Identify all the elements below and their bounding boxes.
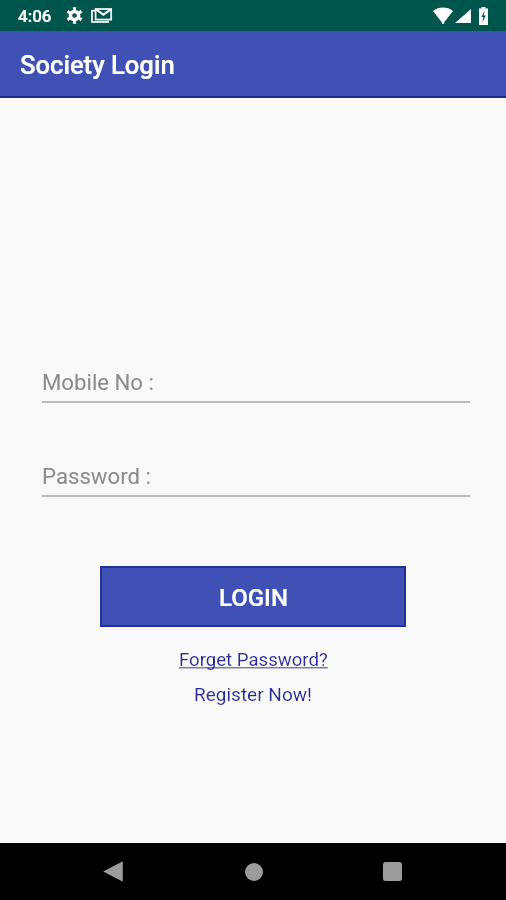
button[interactable]: Register Now! <box>186 680 320 708</box>
staticText: Password : <box>42 463 151 489</box>
button[interactable]: Back <box>88 847 137 896</box>
button[interactable]: LOGIN <box>102 568 404 625</box>
button[interactable]: Recent apps <box>368 847 417 896</box>
staticText: LOGIN <box>219 584 288 612</box>
button[interactable]: Home <box>229 847 278 896</box>
staticText: Society Login <box>20 50 175 80</box>
staticText: 4:06 <box>18 6 52 26</box>
staticText: Mobile No : <box>42 369 154 395</box>
button[interactable]: Forget Password? <box>171 646 336 674</box>
